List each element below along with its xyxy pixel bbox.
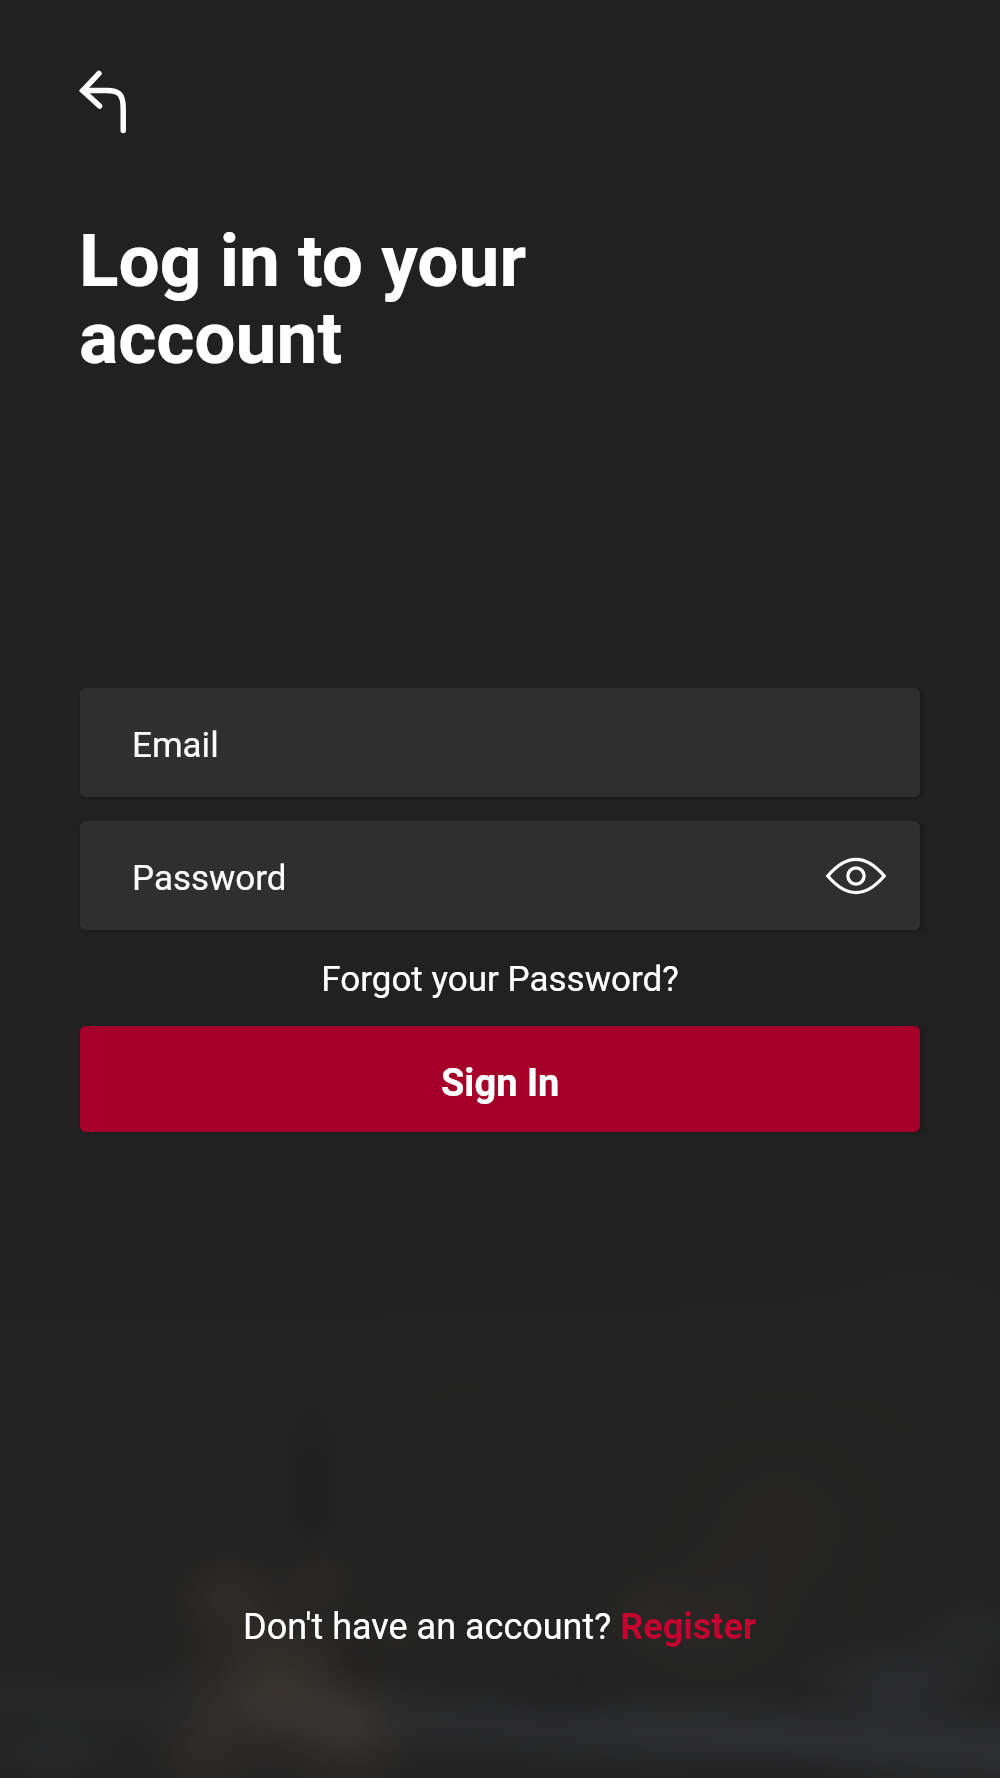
staticText: Forgot your Password? [321,959,679,1000]
staticText: Log in to your account [79,218,527,381]
button[interactable]: Password [80,821,920,930]
button[interactable]: Show password [818,846,894,906]
staticText: Don't have an account? Register [243,1606,757,1648]
staticText: Password [132,858,287,899]
button[interactable]: Forgot your Password? [290,948,710,1010]
button[interactable]: Back [72,58,148,134]
staticText: Email [132,725,219,766]
button[interactable]: Don't have an account? Register [243,1595,757,1659]
button[interactable]: Sign In [80,1026,920,1132]
staticText: Sign In [441,1061,560,1106]
button[interactable]: Email [80,688,920,797]
